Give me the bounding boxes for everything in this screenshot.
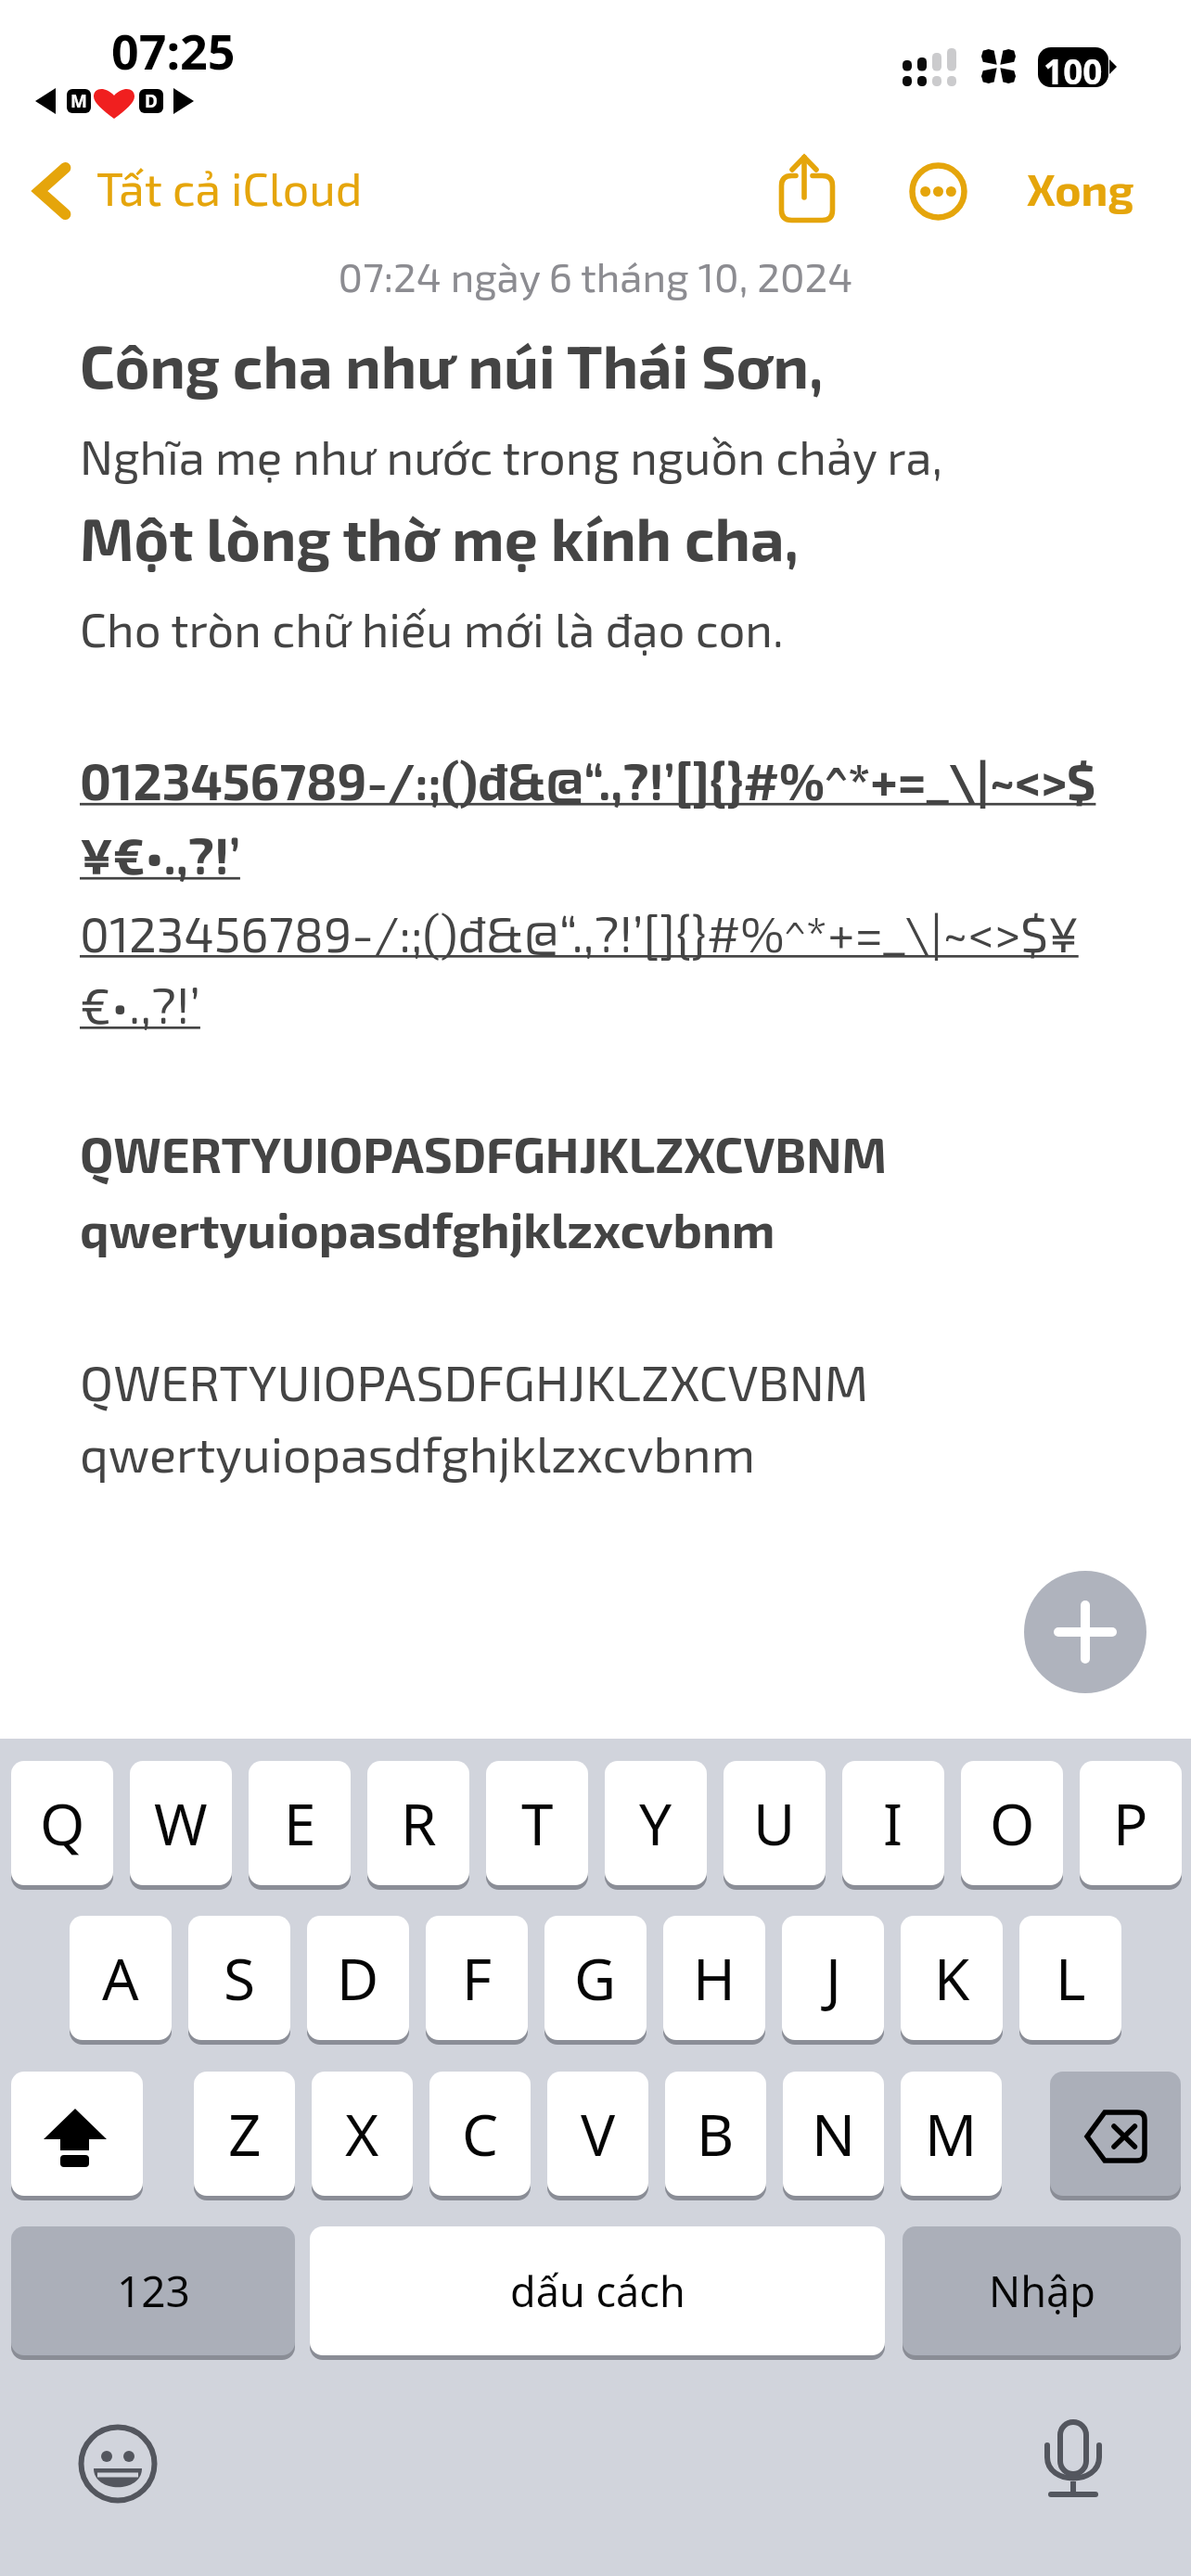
staticText: G — [574, 1939, 617, 2017]
staticText: Nhập — [989, 2263, 1095, 2319]
staticText: O — [990, 1784, 1035, 1862]
button[interactable]: W — [130, 1761, 232, 1890]
button[interactable]: More options — [896, 147, 981, 232]
staticText: 0123456789-/:;()đ&@“.,?!’[]{}#%^*+=_\|~<… — [80, 903, 1079, 963]
staticText: R — [401, 1784, 437, 1862]
staticText: 07:25 — [111, 18, 236, 83]
staticText: 100 — [1044, 47, 1103, 87]
staticText: N — [812, 2095, 856, 2173]
button[interactable]: V — [547, 2072, 648, 2200]
staticText: 123 — [117, 2262, 190, 2320]
staticText: B — [697, 2095, 735, 2173]
staticText: J — [826, 1939, 841, 2017]
staticText: D — [337, 1939, 379, 2017]
button[interactable]: Emoji keyboard — [79, 2425, 157, 2503]
button[interactable]: S — [188, 1916, 290, 2045]
staticText: Q — [40, 1784, 85, 1862]
staticText: Một lòng thờ mẹ kính cha, — [80, 502, 799, 573]
button[interactable]: J — [782, 1916, 884, 2045]
staticText: W — [154, 1784, 208, 1862]
staticText: qwertyuiopasdfghjklzxcvbnm — [80, 1422, 755, 1483]
staticText: S — [224, 1939, 256, 2017]
button[interactable]: L — [1019, 1916, 1121, 2045]
button[interactable]: B — [665, 2072, 766, 2200]
button[interactable]: I — [842, 1761, 944, 1890]
button[interactable]: 123 — [11, 2226, 295, 2360]
staticText: 07:24 ngày 6 tháng 10, 2024 — [0, 251, 1191, 300]
staticText: D — [145, 89, 158, 113]
button[interactable]: X — [312, 2072, 413, 2200]
staticText: Cho tròn chữ hiếu mới là đạo con. — [80, 600, 784, 657]
staticText: U — [753, 1784, 796, 1862]
staticText: Nghĩa mẹ như nước trong nguồn chảy ra, — [80, 427, 943, 484]
button[interactable]: Nhập — [903, 2226, 1181, 2360]
button[interactable]: Q — [11, 1761, 113, 1890]
staticText: qwertyuiopasdfghjklzxcvbnm — [80, 1199, 775, 1258]
button[interactable]: C — [429, 2072, 531, 2200]
button[interactable]: Dictation — [1044, 2420, 1102, 2500]
button[interactable]: Xong — [1011, 145, 1159, 228]
button[interactable]: H — [663, 1916, 765, 2045]
button[interactable]: R — [367, 1761, 469, 1890]
staticText: E — [284, 1784, 316, 1862]
button[interactable]: Shift — [11, 2072, 143, 2200]
staticText: L — [1056, 1939, 1086, 2017]
button[interactable]: E — [249, 1761, 351, 1890]
staticText: dấu cách — [510, 2263, 685, 2319]
button[interactable]: M — [901, 2072, 1002, 2200]
staticText: QWERTYUIOPASDFGHJKLZXCVBNM — [80, 1351, 869, 1411]
button[interactable]: Z — [194, 2072, 295, 2200]
staticText: C — [462, 2095, 499, 2173]
staticText: M — [70, 89, 87, 113]
staticText: QWERTYUIOPASDFGHJKLZXCVBNM — [80, 1124, 888, 1183]
button[interactable]: N — [783, 2072, 884, 2200]
button[interactable]: G — [544, 1916, 647, 2045]
button[interactable]: O — [961, 1761, 1063, 1890]
staticText: ¥€•.,?!’ — [80, 824, 240, 885]
button[interactable]: P — [1080, 1761, 1182, 1890]
staticText: Công cha như núi Thái Sơn, — [80, 329, 824, 401]
staticText: T — [521, 1784, 554, 1862]
button[interactable]: Share — [766, 147, 850, 232]
button[interactable]: Y — [605, 1761, 707, 1890]
staticText: P — [1113, 1784, 1148, 1862]
button[interactable]: A — [70, 1916, 172, 2045]
button[interactable]: Backspace — [1050, 2072, 1181, 2200]
button[interactable]: F — [426, 1916, 528, 2045]
staticText: V — [581, 2095, 616, 2173]
button[interactable]: dấu cách — [310, 2226, 885, 2360]
button[interactable]: D — [307, 1916, 409, 2045]
staticText: K — [934, 1939, 970, 2017]
staticText: Tất cả iCloud — [96, 159, 363, 215]
staticText: F — [462, 1939, 493, 2017]
button[interactable]: T — [486, 1761, 588, 1890]
staticText: €•.,?!’ — [80, 975, 200, 1034]
button[interactable]: U — [724, 1761, 826, 1890]
button[interactable]: Add attachment — [1024, 1571, 1146, 1693]
staticText: H — [693, 1939, 736, 2017]
button[interactable]: K — [901, 1916, 1003, 2045]
staticText: 0123456789-/:;()đ&@“.,?!’[]{}#%^*+=_\|~<… — [80, 750, 1096, 810]
staticText: Xong — [1027, 161, 1134, 215]
staticText: Y — [639, 1784, 672, 1862]
staticText: X — [345, 2095, 379, 2173]
staticText: A — [102, 1939, 139, 2017]
staticText: M — [925, 2095, 978, 2173]
button[interactable]: Tất cả iCloud — [20, 145, 382, 228]
staticText: Z — [228, 2095, 262, 2173]
staticText: I — [883, 1784, 903, 1862]
